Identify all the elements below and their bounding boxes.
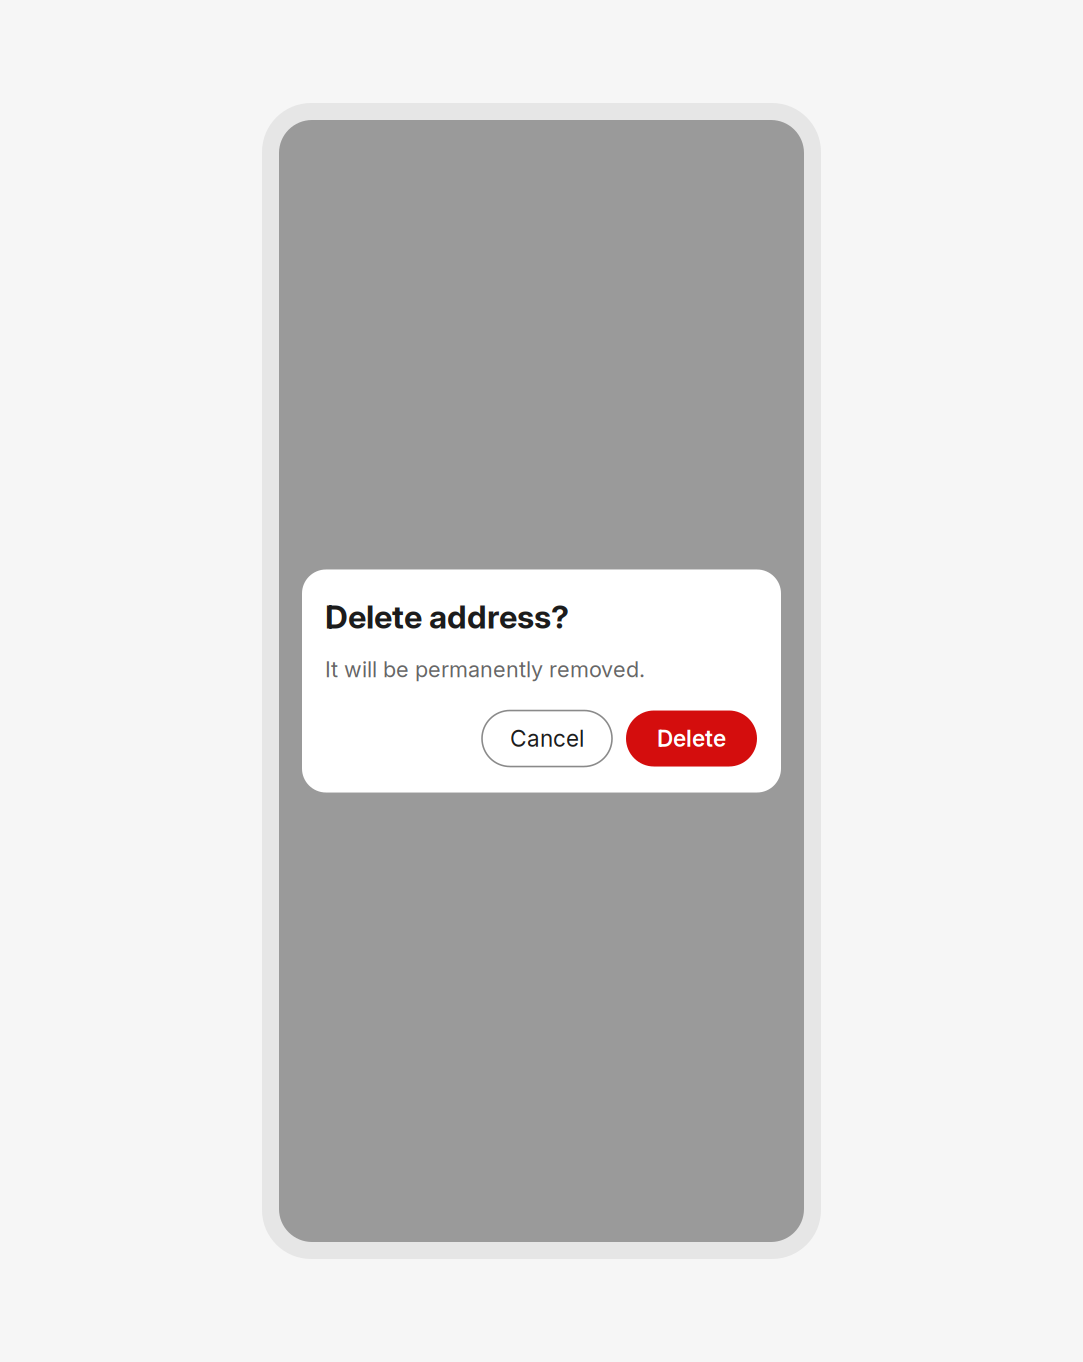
button[interactable]: Cancel bbox=[482, 710, 612, 766]
staticText: Delete address? bbox=[325, 597, 569, 636]
staticText: Delete bbox=[657, 725, 726, 752]
staticText: It will be permanently removed. bbox=[325, 656, 645, 682]
button[interactable]: Delete bbox=[626, 710, 757, 766]
staticText: Cancel bbox=[510, 725, 584, 752]
